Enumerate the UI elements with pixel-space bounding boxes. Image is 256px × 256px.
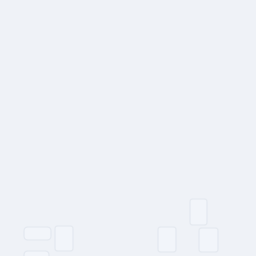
button[interactable]: Item three: [55, 226, 73, 251]
button[interactable]: Item six: [199, 228, 218, 252]
button[interactable]: Item two: [24, 251, 49, 256]
button[interactable]: Item four: [190, 199, 207, 225]
button[interactable]: Item five: [158, 227, 176, 252]
button[interactable]: Item one: [24, 227, 51, 240]
